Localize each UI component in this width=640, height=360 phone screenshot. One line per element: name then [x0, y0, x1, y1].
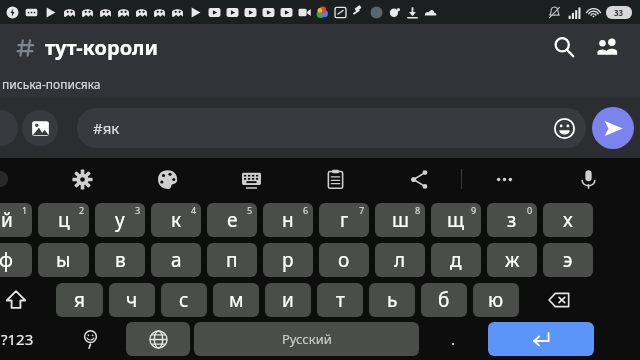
staticText: . [451, 329, 456, 349]
button[interactable]: г [319, 203, 369, 237]
button[interactable]: Emoji [546, 110, 582, 146]
button[interactable]: м [213, 283, 259, 317]
button[interactable]: ю [473, 283, 519, 317]
staticText: з [507, 207, 517, 233]
button[interactable]: л [375, 243, 425, 277]
staticText: л [394, 247, 406, 273]
staticText: е [227, 207, 238, 233]
staticText: ц [58, 207, 70, 233]
button[interactable]: Search [542, 25, 586, 69]
button[interactable]: . [423, 322, 484, 356]
button[interactable]: с [161, 283, 207, 317]
staticText: ?123 [1, 329, 34, 349]
button[interactable]: з [487, 203, 537, 237]
button[interactable]: писька-пописяка [0, 70, 640, 98]
staticText: й [1, 207, 13, 233]
button[interactable]: Members [586, 25, 630, 69]
button[interactable]: н [263, 203, 313, 237]
button[interactable]: у [95, 203, 145, 237]
staticText: ь [387, 287, 398, 313]
staticText: х [563, 207, 573, 233]
staticText: н [282, 207, 294, 233]
button[interactable]: Clipboard [293, 158, 377, 200]
button[interactable]: Settings [40, 158, 125, 200]
button[interactable]: More [462, 158, 546, 200]
button[interactable]: ы [38, 243, 89, 277]
staticText: ф [0, 247, 14, 273]
button[interactable]: ь [369, 283, 415, 317]
button[interactable]: о [319, 243, 369, 277]
button[interactable]: Attach [0, 110, 18, 146]
staticText: п [226, 247, 238, 273]
button[interactable]: Themes [125, 158, 209, 200]
button[interactable]: э [543, 243, 593, 277]
staticText: в [115, 247, 126, 273]
staticText: тут-короли [45, 34, 159, 61]
staticText: г [340, 207, 349, 233]
button[interactable]: Emoji [58, 322, 122, 356]
button[interactable]: ?123 [0, 322, 54, 356]
button[interactable]: Gallery [22, 110, 58, 146]
staticText: 5 [247, 204, 253, 216]
button[interactable]: Stickers [209, 158, 293, 200]
staticText: #як [93, 118, 546, 138]
button[interactable]: б [421, 283, 467, 317]
staticText: 9 [471, 204, 477, 216]
button[interactable]: Enter [488, 322, 594, 356]
staticText: и [282, 287, 294, 313]
staticText: 1 [22, 204, 28, 216]
button[interactable]: ш [375, 203, 425, 237]
button[interactable]: #як [77, 108, 586, 148]
button[interactable]: д [431, 243, 481, 277]
button[interactable]: Share [377, 158, 461, 200]
button[interactable]: п [207, 243, 257, 277]
staticText: Русский [282, 330, 332, 348]
staticText: ш [392, 207, 409, 233]
staticText: р [282, 247, 294, 273]
staticText: о [338, 247, 350, 273]
button[interactable]: ч [109, 283, 155, 317]
button[interactable]: ж [487, 243, 537, 277]
staticText: 3 [135, 204, 141, 216]
button[interactable]: к [151, 203, 201, 237]
button[interactable]: Voice input [546, 158, 630, 200]
button[interactable]: и [265, 283, 311, 317]
staticText: я [74, 287, 85, 313]
staticText: м [229, 287, 244, 313]
staticText: щ [447, 207, 465, 233]
staticText: ж [505, 247, 520, 273]
button[interactable]: й [0, 203, 32, 237]
button[interactable]: Shift [0, 283, 50, 317]
button[interactable]: я [56, 283, 103, 317]
staticText: 6 [303, 204, 309, 216]
staticText: ч [126, 287, 138, 313]
staticText: писька-пописяка [2, 76, 101, 92]
staticText: б [438, 287, 450, 313]
button[interactable]: Send [592, 107, 634, 149]
button[interactable]: ф [0, 243, 32, 277]
staticText: у [115, 207, 125, 233]
button[interactable]: Русский [194, 322, 419, 356]
staticText: э [563, 247, 573, 273]
staticText: к [171, 207, 182, 233]
staticText: с [179, 287, 189, 313]
button[interactable]: а [151, 243, 201, 277]
staticText: 33 [614, 7, 624, 18]
staticText: а [171, 247, 182, 273]
staticText: 0 [527, 204, 533, 216]
button[interactable]: р [263, 243, 313, 277]
button[interactable]: х [543, 203, 593, 237]
staticText: 7 [359, 204, 365, 216]
staticText: 4 [191, 204, 197, 216]
staticText: д [450, 247, 462, 273]
staticText: 2 [79, 204, 85, 216]
button[interactable]: щ [431, 203, 481, 237]
button[interactable]: Backspace [525, 283, 593, 317]
button[interactable]: в [95, 243, 145, 277]
button[interactable]: ц [38, 203, 89, 237]
staticText: т [336, 287, 345, 313]
button[interactable]: е [207, 203, 257, 237]
button[interactable]: Change language [126, 322, 190, 356]
button[interactable]: т [317, 283, 363, 317]
staticText: ы [56, 247, 71, 273]
